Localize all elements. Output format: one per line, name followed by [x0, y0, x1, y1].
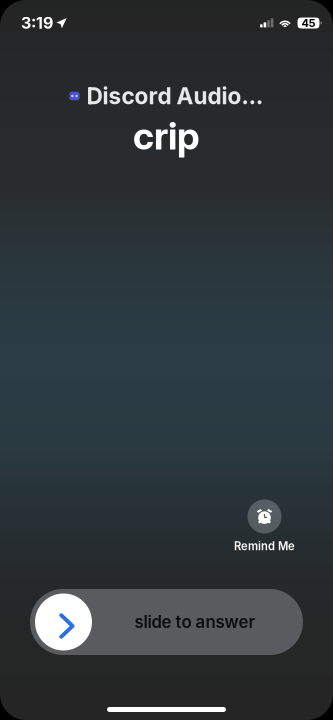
button[interactable]: Remind Me: [234, 499, 295, 553]
button[interactable]: slide to answer: [30, 589, 303, 655]
staticText: Discord Audio…: [86, 82, 263, 110]
staticText: Remind Me: [234, 539, 295, 553]
staticText: 45: [301, 16, 315, 30]
staticText: 3:19: [21, 13, 53, 33]
staticText: slide to answer: [134, 612, 255, 632]
staticText: crip: [133, 113, 200, 159]
